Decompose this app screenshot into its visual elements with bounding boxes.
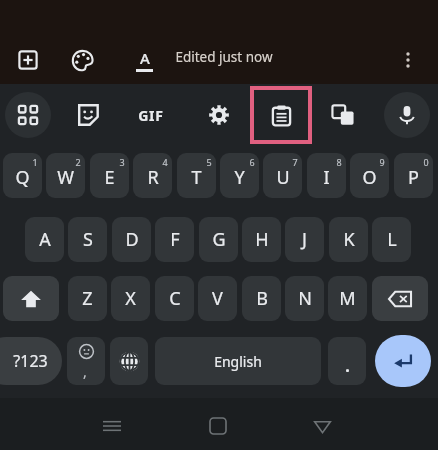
button[interactable]: R — [133, 153, 172, 198]
staticText: 4 — [162, 156, 168, 168]
button[interactable]: Text format — [128, 44, 160, 76]
button[interactable]: S — [68, 217, 107, 262]
staticText: R — [147, 165, 159, 190]
staticText: T — [191, 165, 202, 190]
button[interactable]: Home — [198, 406, 238, 446]
staticText: Edited just now — [175, 48, 273, 66]
staticText: 9 — [379, 156, 385, 168]
button[interactable]: K — [329, 217, 368, 262]
button[interactable]: P — [394, 153, 433, 198]
staticText: 5 — [206, 156, 212, 168]
button[interactable]: English — [155, 337, 321, 385]
staticText: U — [276, 165, 290, 190]
button[interactable]: Clipboard — [252, 88, 310, 142]
button[interactable]: F — [155, 217, 194, 262]
button[interactable]: X — [111, 276, 150, 321]
staticText: A — [39, 227, 51, 252]
staticText: E — [104, 165, 115, 190]
button[interactable]: Q — [3, 153, 42, 198]
staticText: S — [83, 227, 93, 252]
button[interactable]: GIF — [128, 92, 174, 138]
button[interactable]: Backspace — [372, 276, 428, 321]
staticText: K — [343, 227, 355, 252]
staticText: 7 — [292, 156, 298, 168]
button[interactable]: I — [307, 153, 346, 198]
staticText: P — [408, 165, 419, 190]
button[interactable]: U — [263, 153, 302, 198]
staticText: O — [362, 165, 377, 190]
staticText: Y — [234, 165, 245, 190]
button[interactable]: Insert — [12, 44, 44, 76]
staticText: V — [212, 286, 223, 311]
button[interactable]: O — [350, 153, 389, 198]
button[interactable]: C — [155, 276, 194, 321]
button[interactable]: Format palette — [66, 44, 98, 76]
staticText: 6 — [249, 156, 255, 168]
button[interactable]: Translate — [320, 92, 366, 138]
button[interactable]: Stickers — [65, 92, 111, 138]
staticText: Z — [82, 286, 93, 311]
staticText: English — [214, 352, 262, 371]
staticText: G — [212, 227, 226, 252]
staticText: 0 — [423, 156, 429, 168]
button[interactable]: All apps — [5, 92, 51, 138]
button[interactable]: W — [46, 153, 85, 198]
button[interactable]: Settings — [196, 92, 242, 138]
button[interactable]: Change language — [110, 337, 148, 385]
staticText: 3 — [119, 156, 125, 168]
staticText: 8 — [336, 156, 342, 168]
staticText: 1 — [32, 156, 38, 168]
staticText: D — [125, 227, 139, 252]
button[interactable]: V — [198, 276, 237, 321]
staticText: N — [298, 286, 312, 311]
button[interactable]: . — [328, 337, 366, 385]
button[interactable]: Recent apps — [92, 406, 132, 446]
button[interactable]: N — [285, 276, 324, 321]
staticText: GIF — [138, 106, 164, 125]
staticText: J — [302, 227, 307, 252]
staticText: I — [323, 165, 330, 190]
button[interactable]: M — [328, 276, 367, 321]
staticText: Q — [15, 165, 30, 190]
staticText: L — [387, 227, 397, 252]
staticText: . — [345, 355, 350, 377]
staticText: B — [256, 286, 268, 311]
staticText: X — [125, 286, 136, 311]
staticText: 2 — [75, 156, 81, 168]
button[interactable]: J — [285, 217, 324, 262]
button[interactable]: L — [372, 217, 411, 262]
button[interactable]: D — [112, 217, 151, 262]
button[interactable]: More options — [392, 44, 424, 76]
button[interactable]: Emoji — [67, 337, 105, 385]
staticText: C — [169, 286, 181, 311]
staticText: W — [57, 165, 74, 190]
button[interactable]: A — [25, 217, 64, 262]
button[interactable]: Voice input — [384, 92, 430, 138]
staticText: M — [339, 286, 356, 311]
button[interactable]: Y — [220, 153, 259, 198]
button[interactable]: ?123 — [0, 337, 62, 385]
button[interactable]: G — [199, 217, 238, 262]
button[interactable]: T — [177, 153, 216, 198]
staticText: , — [83, 362, 87, 381]
button[interactable]: E — [90, 153, 129, 198]
staticText: A — [140, 48, 150, 68]
button[interactable]: H — [242, 217, 281, 262]
staticText: ?123 — [13, 350, 48, 372]
button[interactable]: Shift — [3, 276, 59, 321]
staticText: F — [170, 227, 180, 252]
button[interactable]: Z — [68, 276, 107, 321]
button[interactable]: Enter — [375, 335, 431, 387]
button[interactable]: Back — [302, 406, 342, 446]
button[interactable]: B — [242, 276, 281, 321]
staticText: H — [255, 227, 269, 252]
